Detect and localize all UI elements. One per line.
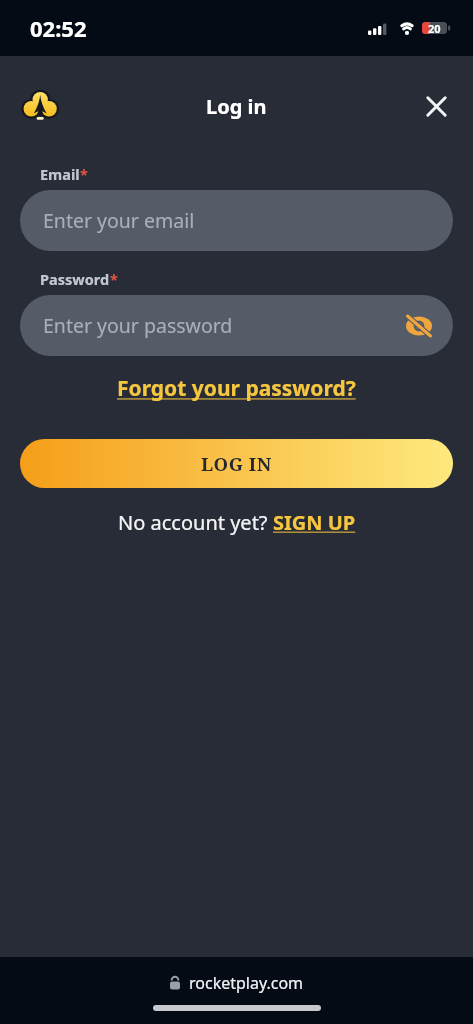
button[interactable] xyxy=(418,88,454,124)
button[interactable]: Enter your password xyxy=(20,295,453,356)
button[interactable]: SIGN UP xyxy=(273,509,356,536)
button[interactable]: Enter your email xyxy=(20,190,453,251)
staticText: No account yet? xyxy=(118,509,273,536)
staticText: Password xyxy=(40,269,110,289)
staticText: LOG IN xyxy=(201,451,272,476)
staticText: Email xyxy=(40,164,80,184)
staticText: * xyxy=(110,269,118,289)
staticText: 20 xyxy=(428,21,441,36)
staticText: rocketplay.com xyxy=(189,972,304,994)
staticText: Enter your email xyxy=(43,207,195,234)
staticText: * xyxy=(80,164,88,184)
button[interactable]: Forgot your password? xyxy=(117,374,356,403)
button[interactable]: LOG IN xyxy=(20,439,453,488)
staticText: 02:52 xyxy=(30,13,87,43)
staticText: Log in xyxy=(206,93,267,120)
button[interactable] xyxy=(401,308,437,344)
staticText: Enter your password xyxy=(43,312,233,339)
